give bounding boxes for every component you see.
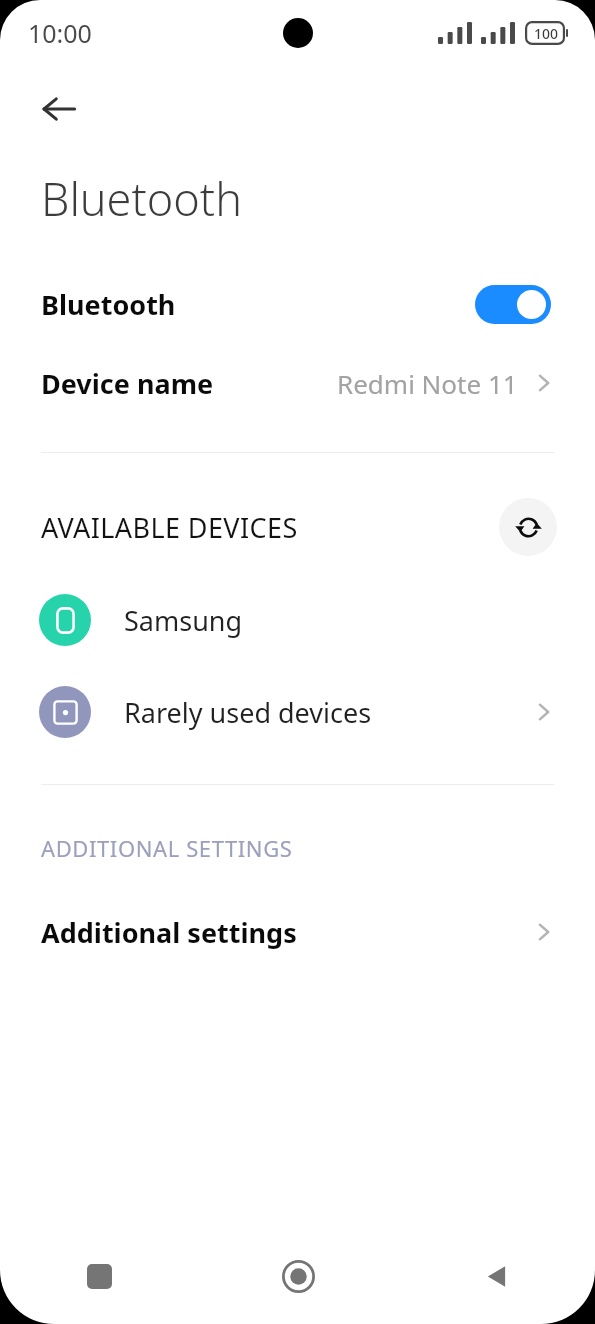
button[interactable]: Back — [397, 1228, 595, 1324]
staticText: Bluetooth — [41, 168, 242, 229]
staticText: Samsung — [124, 602, 243, 639]
button[interactable]: Device name — [0, 358, 595, 408]
button[interactable]: Bluetooth — [0, 277, 595, 331]
button[interactable]: Samsung — [0, 592, 595, 648]
staticText: AVAILABLE DEVICES — [41, 509, 298, 546]
staticText: Rarely used devices — [124, 694, 372, 731]
staticText: ADDITIONAL SETTINGS — [41, 833, 293, 863]
staticText: 100 — [534, 24, 559, 43]
button[interactable]: Back — [24, 74, 94, 144]
staticText: Additional settings — [41, 914, 297, 951]
button[interactable]: Rarely used devices — [0, 684, 595, 740]
button[interactable]: Home — [199, 1228, 397, 1324]
button[interactable]: Additional settings — [0, 906, 595, 958]
staticText: Device name — [41, 365, 214, 402]
button[interactable]: Refresh — [499, 498, 557, 556]
staticText: Bluetooth — [41, 286, 176, 323]
staticText: Redmi Note 11 — [337, 366, 518, 401]
staticText: 10:00 — [28, 16, 92, 50]
button[interactable]: Recents — [0, 1228, 199, 1324]
